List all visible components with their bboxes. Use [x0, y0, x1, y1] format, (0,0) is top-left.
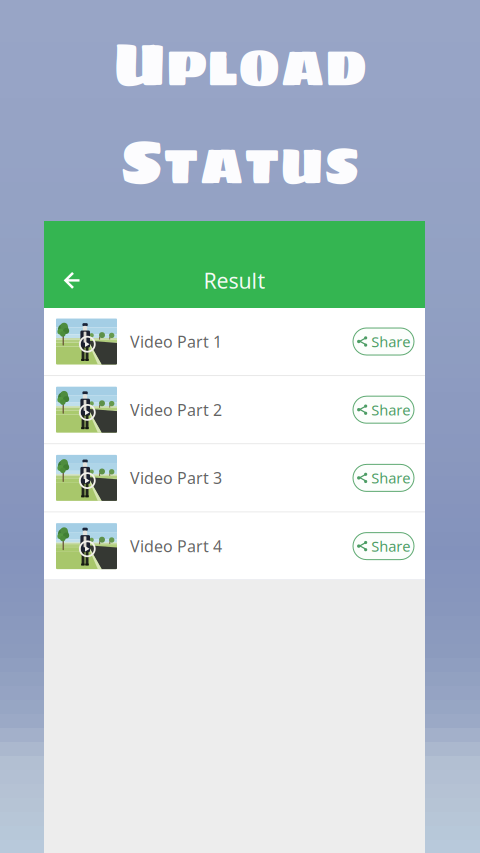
- staticText: Video Part 4: [130, 535, 222, 557]
- button[interactable]: Share: [353, 328, 414, 355]
- staticText: Video Part 2: [130, 399, 222, 420]
- staticText: Result: [203, 266, 265, 295]
- staticText: U: [113, 15, 166, 113]
- staticText: Video Part 1: [130, 331, 222, 352]
- staticText: PLOAD: [166, 27, 367, 108]
- button[interactable]: Share: [353, 533, 414, 560]
- staticText: Share: [371, 332, 410, 351]
- button[interactable]: Video Part 2: [44, 376, 425, 443]
- staticText: Share: [371, 536, 410, 556]
- button[interactable]: Video Part 3: [44, 444, 425, 511]
- button[interactable]: Video Part 1: [44, 308, 425, 375]
- button[interactable]: Video Part 4: [44, 513, 425, 580]
- button[interactable]: Back: [50, 258, 94, 302]
- staticText: Share: [371, 400, 410, 419]
- button[interactable]: Share: [353, 464, 414, 491]
- staticText: TATUS: [163, 125, 360, 206]
- staticText: Video Part 3: [130, 467, 222, 488]
- button[interactable]: Share: [353, 396, 414, 423]
- staticText: Share: [371, 468, 410, 488]
- staticText: S: [120, 113, 163, 211]
